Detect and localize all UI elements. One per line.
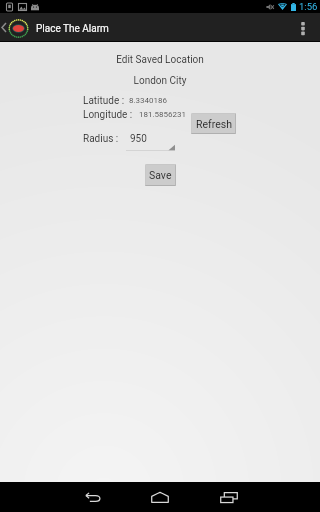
staticText: Refresh — [196, 118, 232, 130]
staticText: London City — [0, 75, 320, 87]
staticText: 181.5856231 — [139, 110, 187, 119]
button[interactable]: More options — [286, 14, 320, 43]
staticText: Place The Alarm — [36, 23, 109, 35]
staticText: Radius : — [83, 133, 119, 145]
staticText: 950 — [130, 133, 147, 145]
button[interactable]: 950 — [126, 130, 175, 151]
button[interactable]: Navigate up — [0, 13, 320, 42]
staticText: Save — [149, 169, 172, 181]
button[interactable]: Home — [136, 482, 184, 512]
button[interactable]: Recent apps — [205, 482, 253, 512]
button[interactable]: Save — [145, 164, 176, 186]
staticText: Longitude : — [83, 109, 133, 121]
staticText: 1:56 — [299, 1, 318, 12]
staticText: Latitude : — [83, 95, 125, 107]
staticText: 8.3340186 — [129, 96, 168, 105]
button[interactable]: Back — [68, 482, 116, 512]
staticText: Edit Saved Location — [0, 54, 320, 66]
button[interactable]: Refresh — [191, 113, 236, 134]
